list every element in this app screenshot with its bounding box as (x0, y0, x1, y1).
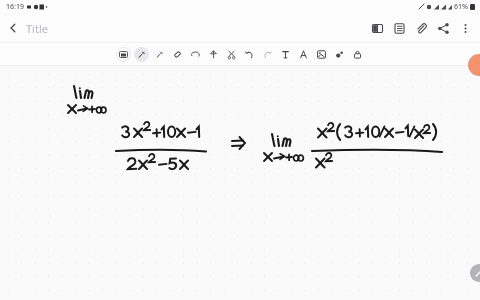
button[interactable]: Insert image (314, 47, 329, 62)
button[interactable]: Undo (242, 47, 257, 62)
button[interactable]: Pen settings (470, 264, 480, 282)
button[interactable]: Font (296, 47, 311, 62)
button[interactable]: Canvas (116, 47, 131, 62)
button[interactable]: Shape (206, 47, 221, 62)
staticText: 16:19 (6, 2, 24, 12)
button[interactable]: Lock (350, 47, 365, 62)
button[interactable]: Text (278, 47, 293, 62)
button[interactable]: Highlighter (152, 47, 167, 62)
button[interactable]: Split view (366, 17, 388, 39)
button[interactable]: Share (432, 17, 454, 39)
button[interactable]: Eraser (170, 47, 185, 62)
button[interactable]: Sticker (332, 47, 347, 62)
button[interactable]: Lasso select (188, 47, 203, 62)
button[interactable]: Notes list (388, 17, 410, 39)
button[interactable]: Cut (224, 47, 239, 62)
staticText: 61% (454, 2, 468, 12)
button[interactable]: Redo (260, 47, 275, 62)
button[interactable]: Pen (134, 47, 149, 62)
staticText: Title (26, 21, 48, 36)
button[interactable]: Back (0, 15, 26, 41)
button[interactable]: More options (454, 17, 476, 39)
button[interactable]: Attach (410, 17, 432, 39)
